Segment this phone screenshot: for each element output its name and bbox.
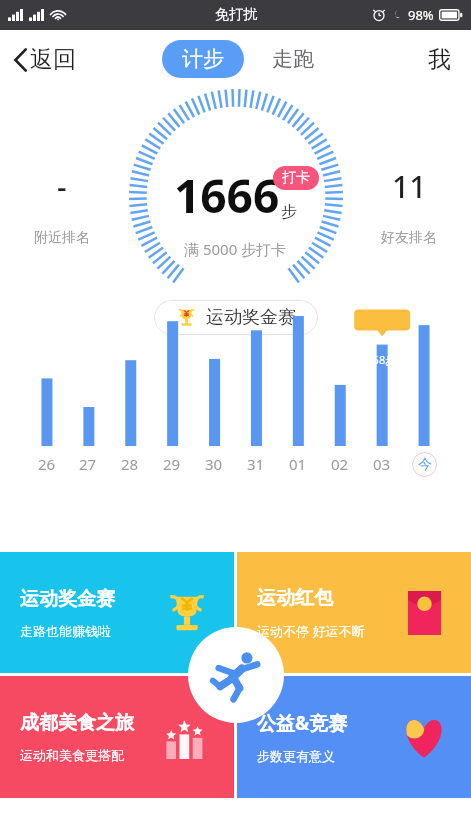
button[interactable]: 27 — [67, 450, 109, 478]
button[interactable]: 03 — [361, 450, 403, 478]
staticText: 03 — [373, 454, 391, 474]
staticText: 1666 — [174, 164, 280, 227]
button[interactable]: - — [34, 166, 90, 247]
staticText: 打卡 — [282, 169, 310, 187]
staticText: 步 — [281, 202, 297, 222]
button[interactable]: 成都美食之旅 — [0, 676, 234, 798]
button[interactable]: 29 — [151, 450, 193, 478]
staticText: 31 — [247, 454, 265, 474]
button[interactable]: 运动奖金赛 — [154, 300, 318, 335]
staticText: 计步 — [182, 46, 224, 72]
button[interactable]: 打卡 — [273, 166, 319, 190]
staticText: 27 — [79, 454, 97, 474]
button[interactable]: 01 — [277, 450, 319, 478]
staticText: 好友排名 — [381, 229, 437, 247]
button[interactable]: 运动红包 — [237, 552, 471, 673]
staticText: 返回 — [30, 45, 76, 74]
staticText: 今 — [418, 456, 432, 474]
staticText: 运动红包 — [257, 586, 333, 610]
staticText: 公益&竞赛 — [257, 710, 348, 736]
staticText: 5258步 — [360, 352, 397, 367]
staticText: 运动奖金赛 — [206, 306, 296, 329]
button[interactable]: 计步 — [162, 40, 244, 78]
staticText: 28 — [121, 454, 139, 474]
staticText: 运动奖金赛 — [20, 587, 115, 611]
button[interactable]: 走跑 — [264, 40, 322, 78]
staticText: 步数更有意义 — [257, 748, 335, 764]
staticText: 02 — [331, 454, 349, 474]
staticText: 26 — [38, 454, 56, 474]
button[interactable]: 31 — [235, 450, 277, 478]
button[interactable]: 26 — [26, 450, 67, 478]
button[interactable]: 开始运动 — [188, 627, 284, 723]
staticText: 我 — [428, 45, 451, 74]
staticText: 成都美食之旅 — [20, 711, 134, 735]
staticText: 01 — [289, 454, 307, 474]
button[interactable]: 30 — [193, 450, 235, 478]
button[interactable]: 运动奖金赛 — [0, 552, 234, 673]
staticText: 98% — [408, 6, 434, 24]
button[interactable]: 返回 — [8, 37, 82, 82]
button[interactable]: 02 — [319, 450, 361, 478]
staticText: 走路也能赚钱啦 — [20, 623, 111, 639]
staticText: 运动不停 好运不断 — [257, 622, 365, 640]
staticText: - — [57, 166, 67, 207]
staticText: 29 — [163, 454, 181, 474]
staticText: 30 — [205, 454, 223, 474]
button[interactable]: 公益&竞赛 — [237, 676, 471, 798]
staticText: 运动和美食更搭配 — [20, 747, 124, 763]
staticText: 免打扰 — [215, 6, 257, 24]
button[interactable]: 28 — [109, 450, 151, 478]
staticText: 满 5000 步打卡 — [184, 239, 287, 259]
staticText: 走跑 — [272, 46, 314, 72]
button[interactable]: 11 — [381, 166, 437, 247]
staticText: 11 — [392, 166, 427, 207]
button[interactable]: 我 — [420, 37, 459, 82]
staticText: 附近排名 — [34, 229, 90, 247]
button[interactable]: 今 — [403, 450, 445, 478]
